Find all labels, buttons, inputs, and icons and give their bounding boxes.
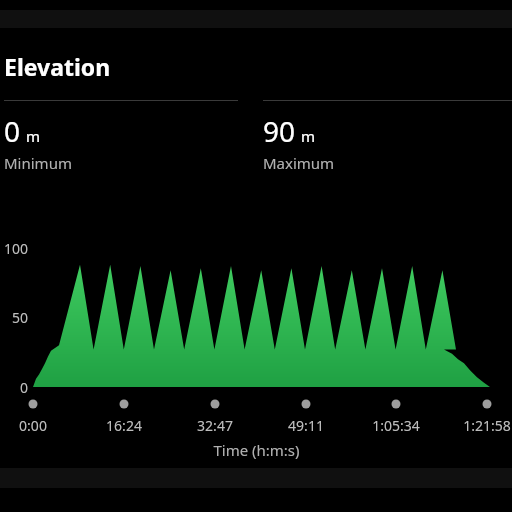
staticText: 1:05:34 (372, 416, 420, 435)
staticText: Minimum (4, 153, 72, 173)
staticText: 32:47 (197, 416, 233, 435)
staticText: 1:21:58 (463, 416, 511, 435)
staticText: 0:00 (19, 416, 47, 435)
staticText: 90 (263, 112, 296, 150)
staticText: 50 (11, 308, 28, 327)
staticText: 49:11 (288, 416, 324, 435)
staticText: Elevation (4, 51, 111, 82)
staticText: Maximum (263, 153, 335, 173)
staticText: m (301, 126, 316, 146)
button[interactable]: 0 (0, 100, 238, 159)
staticText: 100 (3, 239, 28, 258)
staticText: Time (h:m:s) (213, 440, 300, 460)
staticText: 0 (4, 112, 21, 150)
button[interactable]: 90 (259, 100, 512, 159)
staticText: 0 (19, 378, 28, 397)
staticText: 16:24 (106, 416, 142, 435)
staticText: m (26, 126, 41, 146)
